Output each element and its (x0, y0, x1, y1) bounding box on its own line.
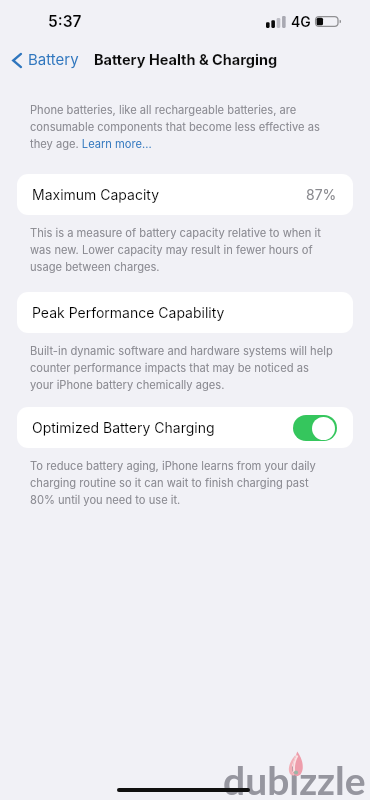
staticText: Phone batteries, like all rechargeable b… (30, 100, 334, 151)
staticText: Battery (28, 50, 79, 68)
staticText: Battery Health & Charging (94, 51, 278, 69)
staticText: 4G (291, 13, 311, 30)
staticText: Maximum Capacity (32, 186, 160, 203)
staticText: 5:37 (48, 12, 82, 31)
button[interactable]: Optimized Battery Charging toggle (293, 415, 337, 441)
button[interactable]: Optimized Battery Charging (17, 407, 353, 448)
staticText: To reduce battery aging, iPhone learns f… (30, 456, 334, 507)
staticText: dubizzle (223, 757, 366, 800)
staticText: Peak Performance Capability (32, 304, 225, 321)
staticText: This is a measure of battery capacity re… (30, 223, 334, 274)
staticText: 87% (306, 186, 337, 203)
button[interactable]: Maximum Capacity (17, 174, 353, 215)
button[interactable]: Peak Performance Capability (17, 292, 353, 333)
staticText: Optimized Battery Charging (32, 419, 215, 436)
button[interactable]: Battery (0, 49, 85, 75)
staticText: Built-in dynamic software and hardware s… (30, 341, 334, 392)
